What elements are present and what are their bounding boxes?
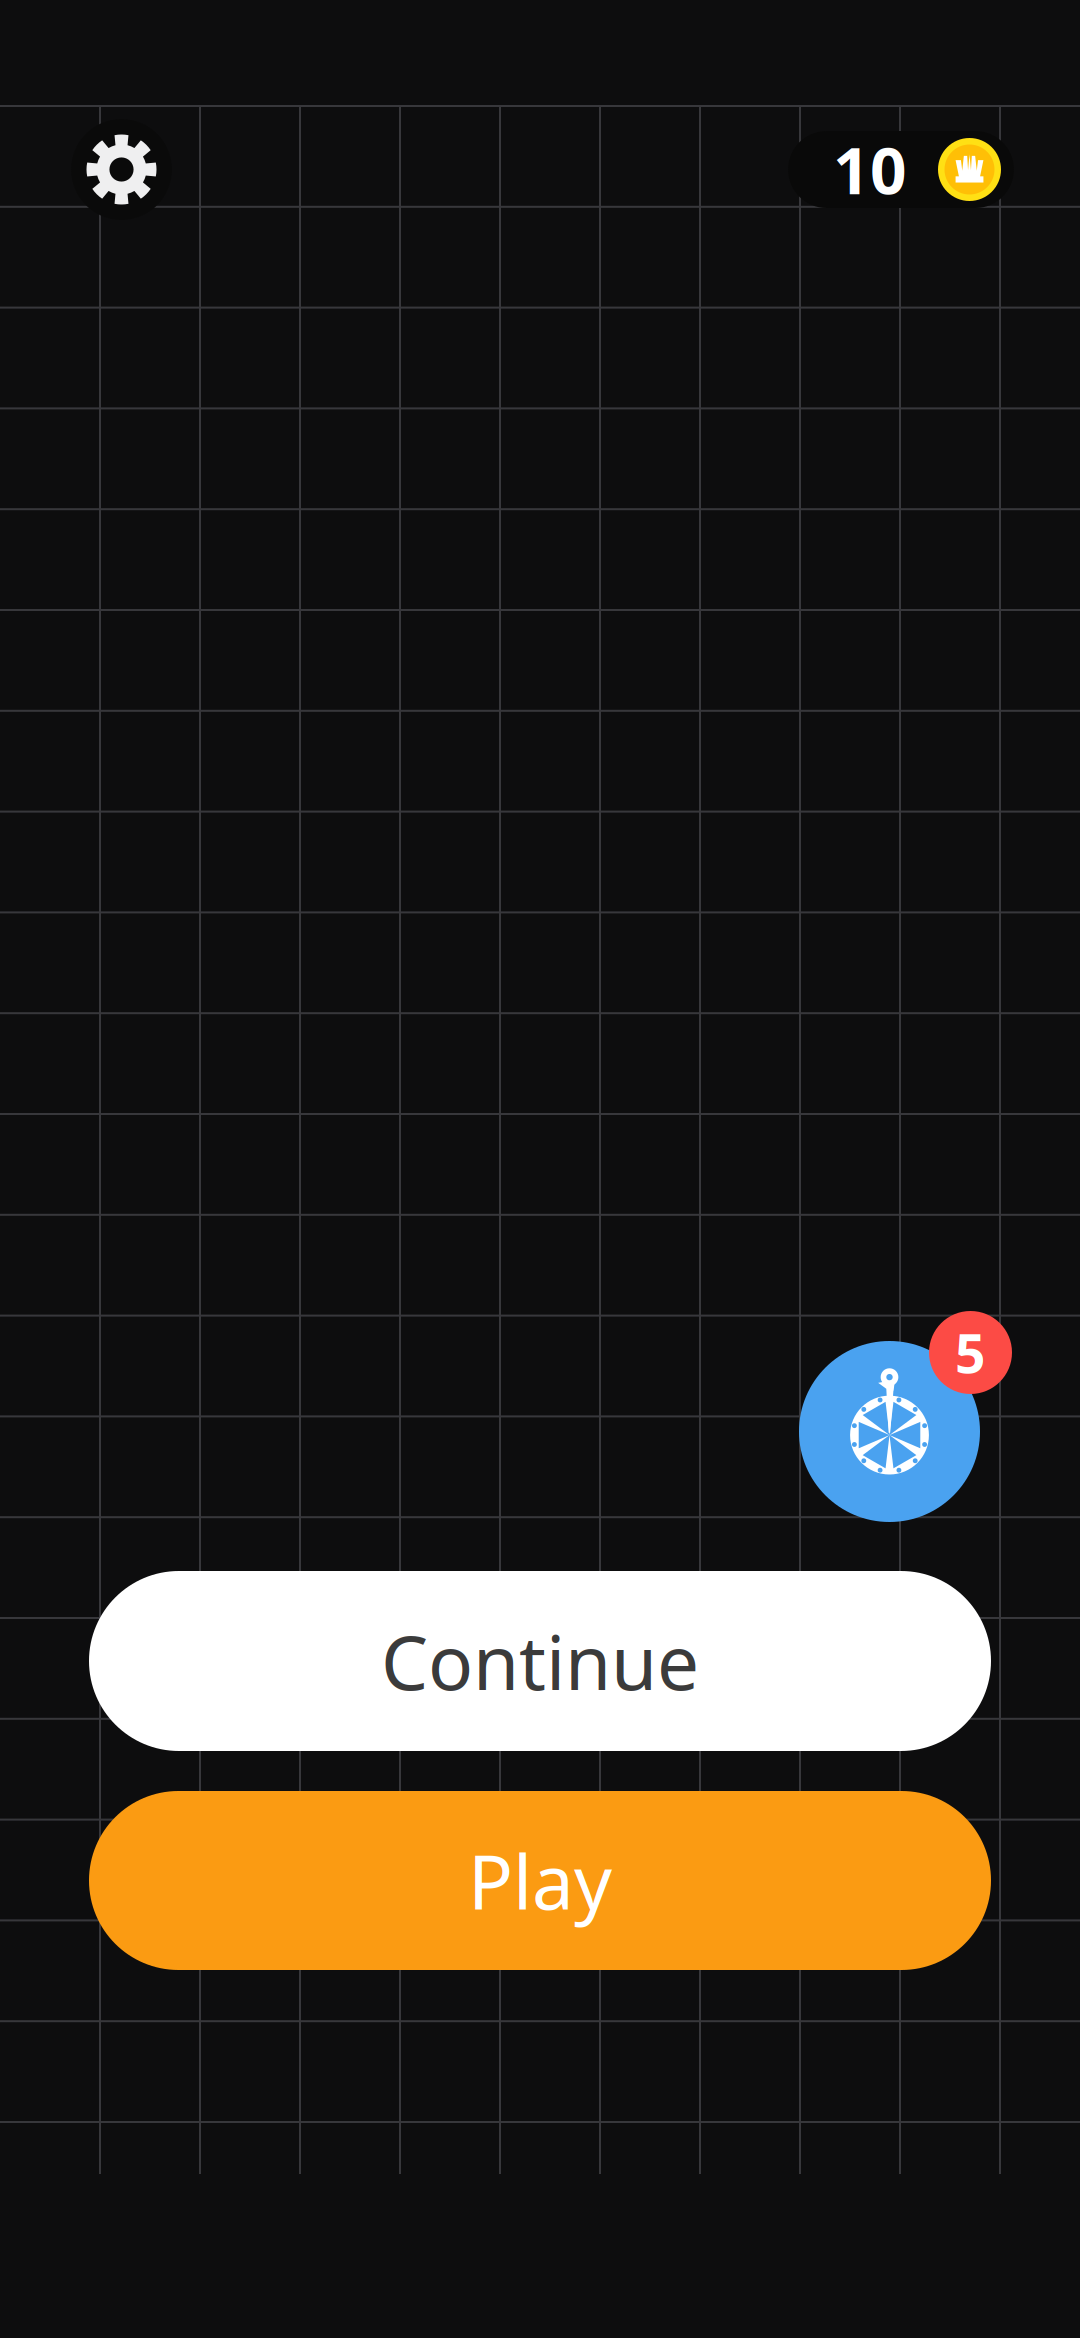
button[interactable]: Continue <box>89 1571 991 1751</box>
button[interactable]: Play <box>89 1791 991 1970</box>
staticText: 5 <box>955 1317 986 1388</box>
staticText: Play <box>468 1831 612 1930</box>
staticText: Continue <box>381 1611 699 1711</box>
button[interactable]: Settings <box>71 119 172 220</box>
button[interactable]: Coins: 10 <box>788 131 1014 208</box>
staticText: 10 <box>833 127 907 212</box>
button[interactable]: Spin the wheel, 5 spins left <box>800 1312 1011 1521</box>
